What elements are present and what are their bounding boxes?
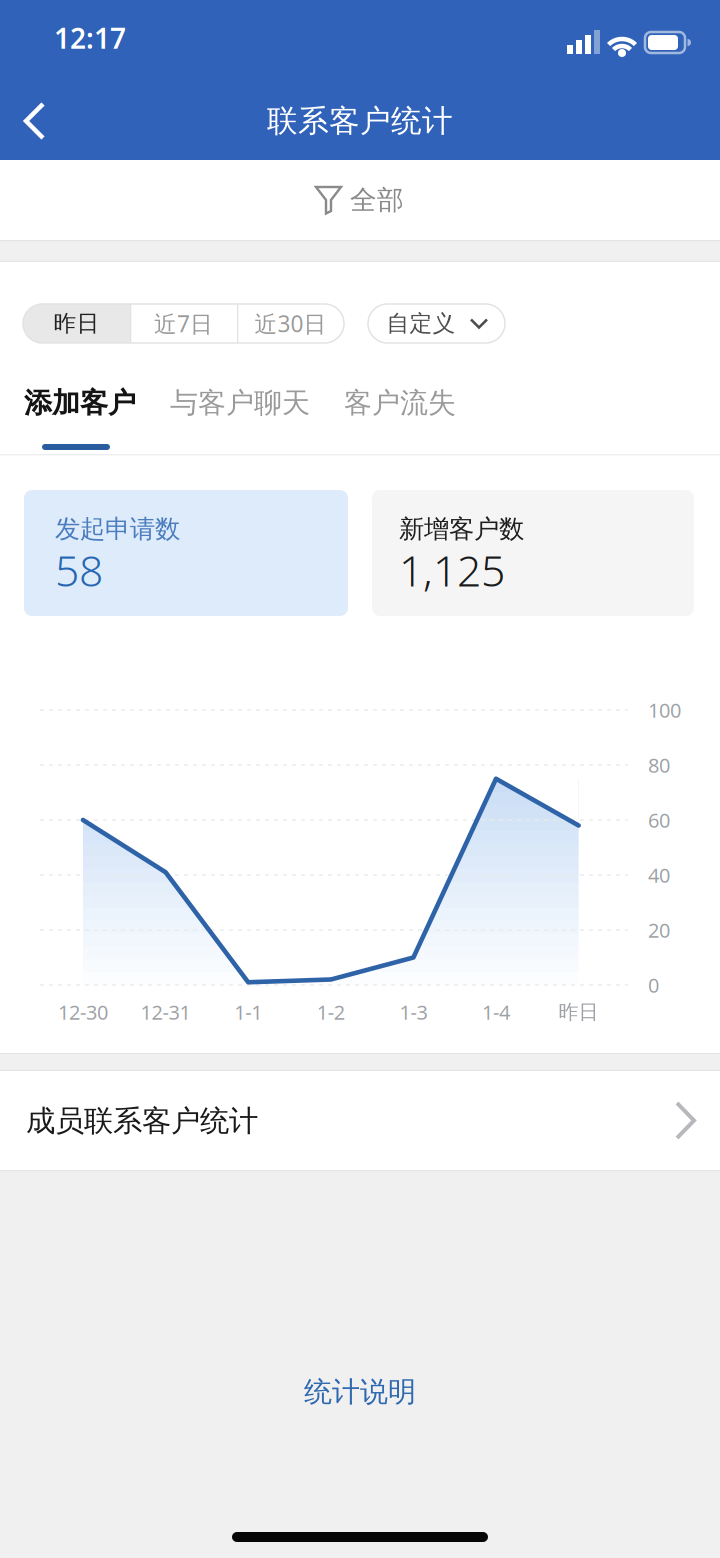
button[interactable]: 昨日 [23, 304, 130, 343]
button[interactable]: 自定义 [368, 304, 505, 343]
button[interactable]: 近30日 [237, 304, 344, 343]
button[interactable]: 近7日 [130, 304, 237, 343]
staticText: 40 [648, 862, 670, 888]
staticText: 昨日 [559, 1000, 599, 1024]
staticText: 58 [55, 542, 103, 598]
staticText: 12-31 [141, 999, 191, 1025]
button[interactable]: 统计说明 [0, 1370, 720, 1414]
staticText: 与客户聊天 [170, 386, 310, 420]
staticText: 80 [648, 752, 670, 778]
button[interactable]: Back [0, 0, 70, 160]
staticText: 联系客户统计 [267, 102, 453, 140]
button[interactable]: 添加客户 [24, 371, 154, 435]
button[interactable]: 筛选 全部 [0, 160, 720, 240]
staticText: 全部 [350, 184, 404, 216]
staticText: 100 [648, 697, 681, 723]
staticText: 1,125 [399, 542, 505, 598]
staticText: 1-1 [234, 999, 262, 1025]
staticText: 60 [648, 807, 670, 833]
staticText: 12:17 [54, 19, 126, 57]
staticText: 发起申请数 [55, 513, 180, 544]
staticText: 成员联系客户统计 [26, 1103, 258, 1139]
staticText: 12-30 [58, 999, 108, 1025]
staticText: 0 [648, 972, 659, 998]
staticText: 统计说明 [304, 1375, 416, 1409]
staticText: 新增客户数 [399, 513, 524, 544]
button[interactable]: 成员联系客户统计 [0, 1071, 720, 1170]
staticText: 昨日 [53, 310, 99, 337]
staticText: 添加客户 [24, 386, 136, 420]
staticText: 近30日 [254, 308, 326, 338]
button[interactable]: 与客户聊天 [170, 371, 330, 435]
button[interactable]: 客户流失 [344, 371, 474, 435]
staticText: 近7日 [154, 308, 213, 338]
staticText: 自定义 [386, 310, 455, 337]
staticText: 客户流失 [344, 386, 456, 420]
staticText: 1-3 [399, 999, 427, 1025]
staticText: 20 [648, 917, 670, 943]
staticText: 1-4 [482, 999, 510, 1025]
staticText: 1-2 [317, 999, 345, 1025]
